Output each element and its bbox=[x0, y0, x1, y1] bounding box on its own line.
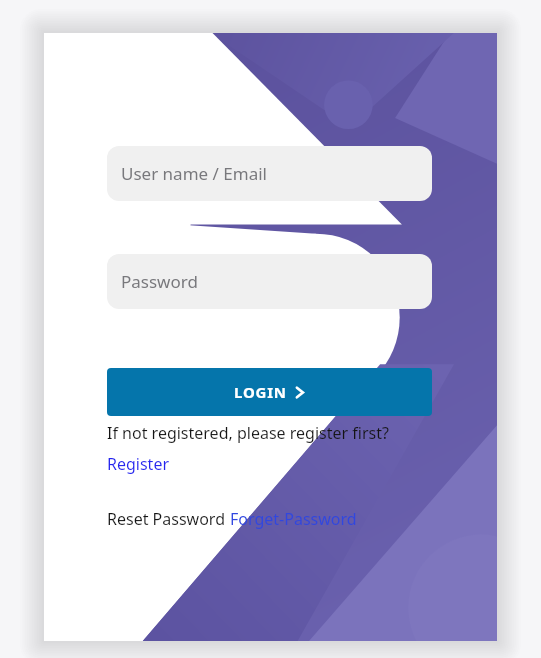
staticText: Register bbox=[107, 453, 170, 475]
button[interactable]: Password bbox=[107, 254, 432, 309]
button[interactable]: Register bbox=[107, 453, 170, 475]
button[interactable]: User name / Email bbox=[107, 146, 432, 201]
staticText: If not registered, please register first… bbox=[107, 422, 389, 444]
staticText: User name / Email bbox=[121, 162, 267, 185]
button[interactable]: Forget-Password bbox=[230, 508, 357, 530]
staticText: Password bbox=[121, 270, 198, 293]
staticText: Reset Password bbox=[107, 508, 230, 530]
button[interactable]: LOGIN bbox=[107, 368, 432, 416]
staticText: Forget-Password bbox=[230, 508, 357, 530]
staticText: LOGIN bbox=[234, 382, 287, 402]
